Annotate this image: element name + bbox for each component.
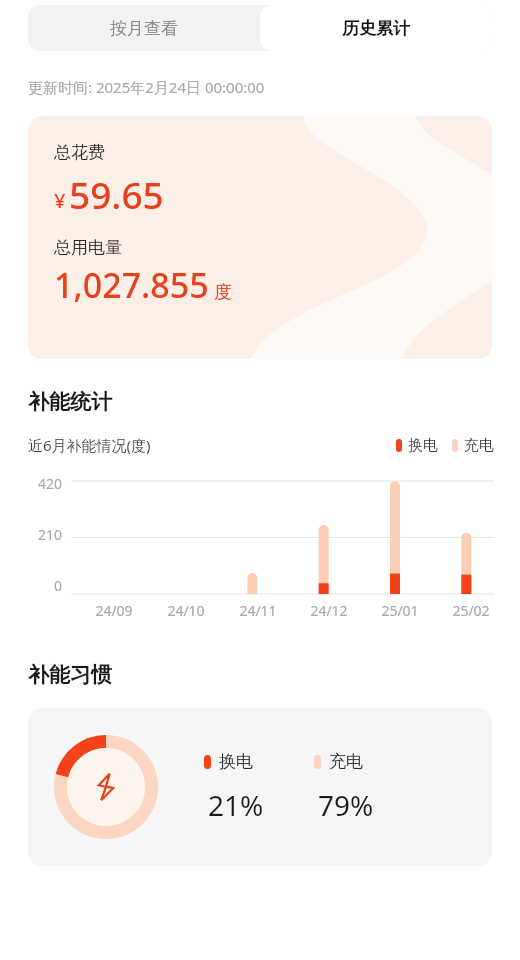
staticText: 59.65 bbox=[69, 169, 164, 219]
staticText: 24/12 bbox=[310, 601, 348, 620]
button[interactable]: 总花费 bbox=[28, 116, 492, 359]
staticText: 充电 bbox=[329, 751, 363, 772]
staticText: 总用电量 bbox=[54, 237, 122, 258]
staticText: 换电 bbox=[408, 436, 438, 455]
staticText: 24/11 bbox=[239, 601, 277, 620]
staticText: 210 bbox=[37, 525, 62, 544]
staticText: 24/10 bbox=[167, 601, 205, 620]
staticText: 21% bbox=[208, 786, 264, 824]
staticText: 补能统计 bbox=[28, 389, 112, 415]
staticText: 420 bbox=[37, 474, 62, 493]
staticText: 充电 bbox=[464, 436, 494, 455]
staticText: ¥ bbox=[54, 187, 66, 214]
button[interactable]: 换电 bbox=[28, 708, 492, 866]
staticText: 0 bbox=[53, 576, 62, 595]
staticText: 补能习惯 bbox=[28, 662, 112, 688]
staticText: 历史累计 bbox=[342, 18, 410, 39]
staticText: 近6月补能情况(度) bbox=[28, 435, 151, 455]
staticText: 度 bbox=[214, 281, 232, 304]
button[interactable]: 历史累计 bbox=[260, 5, 492, 51]
staticText: 更新时间: 2025年2月24日 00:00:00 bbox=[28, 77, 265, 97]
staticText: 1,027.855 bbox=[54, 262, 209, 308]
staticText: 25/01 bbox=[381, 601, 419, 620]
staticText: 24/09 bbox=[95, 601, 133, 620]
staticText: 25/02 bbox=[452, 601, 490, 620]
button[interactable]: 按月查看 bbox=[28, 5, 260, 51]
staticText: 换电 bbox=[219, 751, 253, 772]
staticText: 总花费 bbox=[54, 142, 105, 163]
staticText: 79% bbox=[318, 786, 374, 824]
staticText: 按月查看 bbox=[110, 18, 178, 39]
